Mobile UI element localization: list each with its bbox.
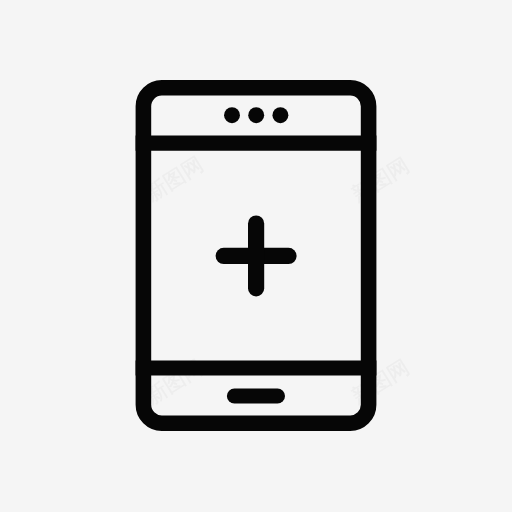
button[interactable]: Add new mobile device (0, 0, 512, 512)
staticText: 新图网 (141, 151, 208, 207)
staticText: 新图网 (347, 152, 414, 208)
staticText: 新图网 (141, 354, 208, 410)
staticText: 新图网 (347, 354, 414, 410)
